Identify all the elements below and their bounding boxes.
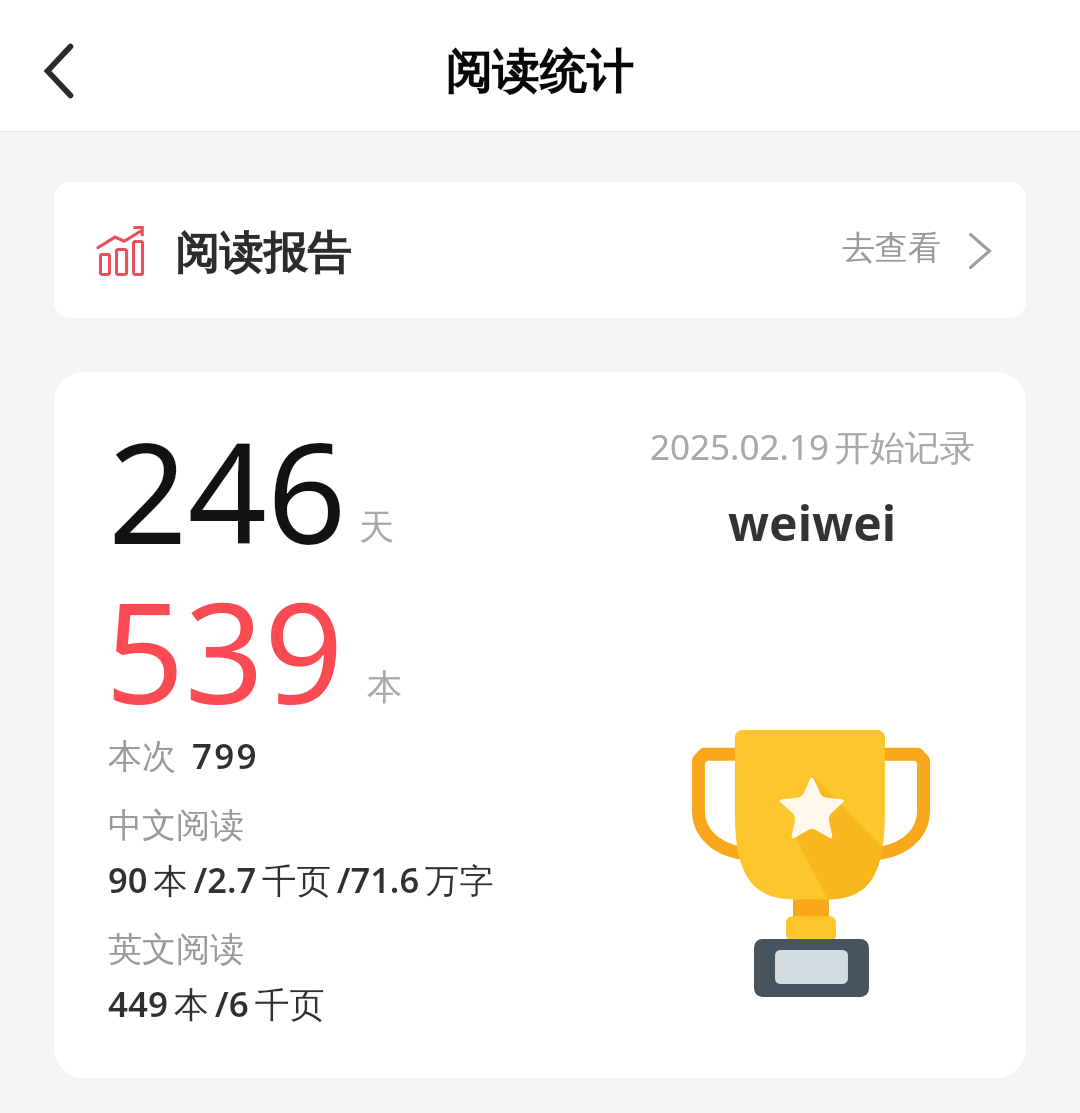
other: Open reading report [969,233,991,269]
staticText: 天 [359,505,394,549]
staticText: 阅读报告 [175,226,351,281]
staticText: 449 本 /6 千页 [108,980,325,1028]
staticText: 本次 [108,735,176,778]
button[interactable]: 阅读报告 [54,182,1026,318]
staticText: 中文阅读 [108,804,244,847]
staticText: 本 [367,665,402,709]
staticText: 去查看 [842,227,941,269]
staticText: 英文阅读 [108,928,244,971]
staticText: 90 本 /2.7 千页 /71.6 万字 [108,856,494,903]
staticText: 阅读统计 [445,43,633,102]
staticText: 799 [192,732,259,780]
staticText: weiwei [728,490,897,555]
staticText: 2025.02.19 开始记录 [650,423,975,471]
button[interactable]: Back [7,19,111,123]
staticText: 539 [105,555,344,744]
staticText: 246 [108,395,347,584]
